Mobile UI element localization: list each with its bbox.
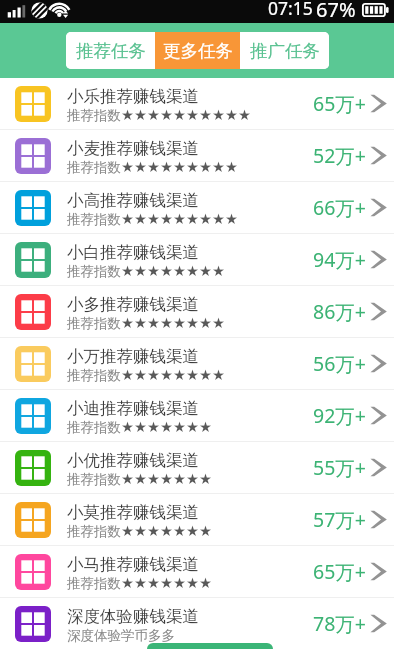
staticText: 小万推荐赚钱渠道 xyxy=(67,346,199,367)
staticText: ★★★★★★★ xyxy=(121,471,212,488)
staticText: 57万+ xyxy=(313,506,366,533)
staticText: 65万+ xyxy=(313,558,366,585)
button[interactable]: 小麦推荐赚钱渠道 xyxy=(0,130,394,182)
staticText: 更多任务 xyxy=(163,40,233,62)
staticText: ★★★★★★★★ xyxy=(121,315,225,332)
staticText: 小多推荐赚钱渠道 xyxy=(67,294,199,315)
button[interactable]: 小乐推荐赚钱渠道 xyxy=(0,78,394,130)
staticText: 66万+ xyxy=(313,194,366,221)
staticText: 小莫推荐赚钱渠道 xyxy=(67,502,199,523)
staticText: 94万+ xyxy=(313,246,366,273)
staticText: 小迪推荐赚钱渠道 xyxy=(67,398,199,419)
button[interactable]: 更多任务 xyxy=(155,32,240,69)
staticText: 52万+ xyxy=(313,142,366,169)
other: Open xyxy=(369,456,387,479)
staticText: ★★★★★★★ xyxy=(121,523,212,540)
staticText: 推广任务 xyxy=(250,40,320,62)
button[interactable]: 小万推荐赚钱渠道 xyxy=(0,338,394,390)
staticText: 推荐指数 xyxy=(67,367,121,384)
staticText: 小白推荐赚钱渠道 xyxy=(67,242,199,263)
button[interactable]: 小莫推荐赚钱渠道 xyxy=(0,494,394,546)
staticText: ★★★★★★★ xyxy=(121,575,212,592)
staticText: 推荐指数 xyxy=(67,575,121,592)
staticText: 推荐任务 xyxy=(76,40,146,62)
staticText: 推荐指数 xyxy=(67,107,121,124)
staticText: 小麦推荐赚钱渠道 xyxy=(67,138,199,159)
staticText: 78万+ xyxy=(313,610,366,637)
button[interactable]: 小马推荐赚钱渠道 xyxy=(0,546,394,598)
other: Open xyxy=(369,248,387,271)
staticText: 小高推荐赚钱渠道 xyxy=(67,190,199,211)
staticText: 推荐指数 xyxy=(67,419,121,436)
other: Open xyxy=(369,196,387,219)
other: Open xyxy=(369,92,387,115)
other: Open xyxy=(369,404,387,427)
button[interactable]: 推广任务 xyxy=(240,32,329,69)
staticText: ★★★★★★★★★ xyxy=(121,211,238,228)
staticText: 92万+ xyxy=(313,402,366,429)
staticText: 推荐指数 xyxy=(67,315,121,332)
staticText: ★★★★★★★★ xyxy=(121,263,225,280)
staticText: 推荐指数 xyxy=(67,211,121,228)
staticText: 07:15 xyxy=(268,0,313,19)
staticText: 推荐指数 xyxy=(67,523,121,540)
button[interactable]: More tasks xyxy=(147,643,273,649)
staticText: 55万+ xyxy=(313,454,366,481)
other: Open xyxy=(369,144,387,167)
staticText: ★★★★★★★ xyxy=(121,419,212,436)
other: Open xyxy=(369,352,387,375)
button[interactable]: 小优推荐赚钱渠道 xyxy=(0,442,394,494)
staticText: 推荐指数 xyxy=(67,471,121,488)
other: Open xyxy=(369,560,387,583)
button[interactable]: 小白推荐赚钱渠道 xyxy=(0,234,394,286)
staticText: 推荐指数 xyxy=(67,263,121,280)
other: Open xyxy=(369,508,387,531)
staticText: ★★★★★★★★★ xyxy=(121,159,238,176)
staticText: 小乐推荐赚钱渠道 xyxy=(67,86,199,107)
staticText: ★★★★★★★★ xyxy=(121,367,225,384)
staticText: 推荐指数 xyxy=(67,159,121,176)
other: Open xyxy=(369,300,387,323)
staticText: 小优推荐赚钱渠道 xyxy=(67,450,199,471)
button[interactable]: 小迪推荐赚钱渠道 xyxy=(0,390,394,442)
other: Open xyxy=(369,612,387,635)
staticText: 67% xyxy=(316,0,356,19)
staticText: 小马推荐赚钱渠道 xyxy=(67,554,199,575)
staticText: 86万+ xyxy=(313,298,366,325)
button[interactable]: 小多推荐赚钱渠道 xyxy=(0,286,394,338)
staticText: 65万+ xyxy=(313,90,366,117)
button[interactable]: 小高推荐赚钱渠道 xyxy=(0,182,394,234)
staticText: 深度体验学币多多 xyxy=(67,627,175,644)
staticText: ★★★★★★★★★★ xyxy=(121,107,251,124)
button[interactable]: 深度体验赚钱渠道 xyxy=(0,598,394,649)
staticText: 深度体验赚钱渠道 xyxy=(67,606,199,627)
staticText: 56万+ xyxy=(313,350,366,377)
button[interactable]: 推荐任务 xyxy=(66,32,155,69)
